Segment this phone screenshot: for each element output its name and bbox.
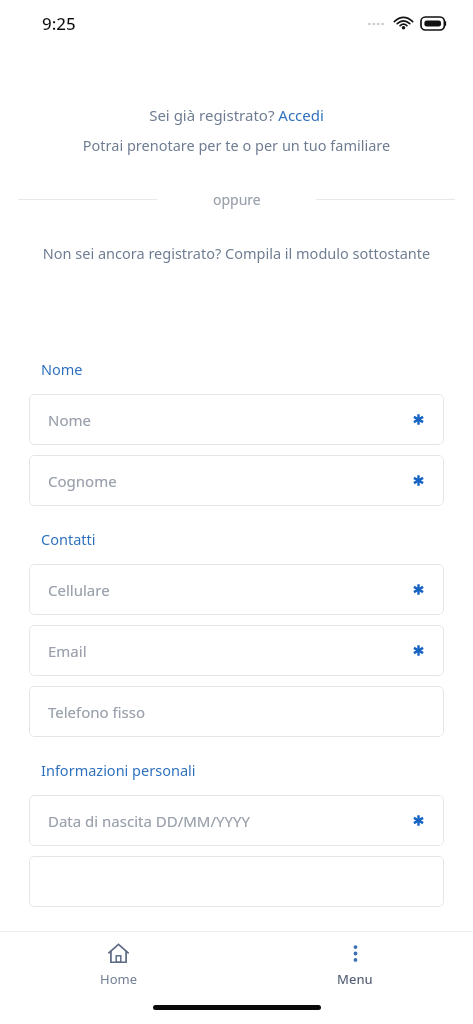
staticText: Telefono fisso [48,702,146,722]
staticText: Menu [337,970,373,988]
button[interactable]: Home [70,932,166,988]
button[interactable]: Sei già registrato? Accedi [143,102,330,128]
staticText: Contatti [41,529,473,549]
staticText: Informazioni personali [41,760,473,780]
button[interactable]: Email [29,625,444,676]
button[interactable]: Nome [29,394,444,445]
button[interactable]: Menu [307,932,403,988]
other: Home [107,942,130,965]
staticText: Nome [48,410,91,430]
staticText: Data di nascita DD/MM/YYYY [48,811,250,831]
staticText: Cellulare [48,580,110,600]
button[interactable] [29,856,444,907]
staticText: Email [48,641,87,661]
button[interactable]: Cellulare [29,564,444,615]
staticText: Sei già registrato? Accedi [149,105,324,125]
staticText: Home [100,970,137,988]
staticText: Potrai prenotare per te o per un tuo fam… [12,135,461,155]
other: Menu [344,942,367,965]
staticText: 9:25 [42,12,76,35]
staticText: oppure [213,190,261,209]
staticText: Non sei ancora registrato? Compila il mo… [10,243,463,263]
staticText: Cognome [48,471,117,491]
button[interactable]: Cognome [29,455,444,506]
staticText: Nome [41,359,473,379]
button[interactable]: Telefono fisso [29,686,444,737]
button[interactable]: Data di nascita DD/MM/YYYY [29,795,444,846]
